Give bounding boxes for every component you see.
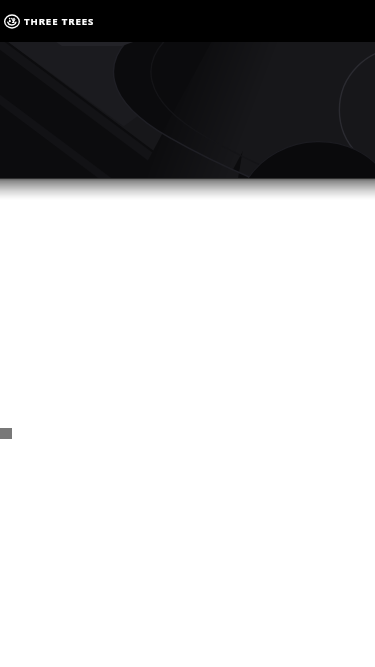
staticText: THREE TREES bbox=[24, 15, 95, 28]
button[interactable]: THREE TREES bbox=[0, 0, 375, 42]
